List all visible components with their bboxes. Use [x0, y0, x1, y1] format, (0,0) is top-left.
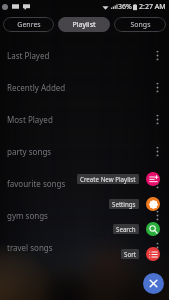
staticText: Create New Playlist: [80, 175, 136, 183]
staticText: Playlist: [72, 20, 96, 30]
staticText: Most Played: [7, 114, 145, 125]
staticText: Genres: [17, 20, 41, 30]
staticText: party songs: [7, 146, 145, 157]
button[interactable]: Sort: [146, 247, 160, 261]
staticText: Settings: [112, 200, 136, 208]
button[interactable]: More options: [145, 139, 169, 163]
button[interactable]: Search: [116, 224, 136, 234]
button[interactable]: More options: [145, 235, 169, 259]
button[interactable]: Most Played: [0, 103, 169, 135]
staticText: 2:27 AM: [139, 2, 166, 12]
button[interactable]: More options: [145, 43, 169, 67]
button[interactable]: More options: [145, 107, 169, 131]
staticText: gym songs: [7, 210, 145, 221]
staticText: Sort: [124, 250, 136, 258]
button[interactable]: Sort: [124, 249, 136, 259]
button[interactable]: Settings: [112, 199, 136, 209]
button[interactable]: Settings: [146, 197, 160, 211]
button[interactable]: Create New Playlist: [146, 172, 160, 186]
button[interactable]: travel songs: [0, 231, 169, 263]
button[interactable]: Last Played: [0, 39, 169, 71]
button[interactable]: Create New Playlist: [80, 174, 136, 184]
button[interactable]: Recently Added: [0, 71, 169, 103]
staticText: 36%: [118, 2, 132, 12]
button[interactable]: More options: [145, 203, 169, 227]
staticText: Recently Added: [7, 82, 145, 93]
button[interactable]: More options: [145, 171, 169, 195]
button[interactable]: Close menu: [143, 273, 164, 294]
staticText: Songs: [130, 20, 151, 30]
staticText: Search: [116, 225, 136, 233]
button[interactable]: Search: [146, 222, 160, 236]
button[interactable]: party songs: [0, 135, 169, 167]
button[interactable]: Songs: [114, 17, 166, 32]
button[interactable]: favourite songs: [0, 167, 169, 199]
button[interactable]: gym songs: [0, 199, 169, 231]
button[interactable]: Genres: [3, 17, 54, 32]
staticText: favourite songs: [7, 178, 145, 189]
staticText: Last Played: [7, 50, 145, 61]
button[interactable]: More options: [145, 75, 169, 99]
staticText: travel songs: [7, 242, 145, 253]
button[interactable]: Playlist: [58, 17, 110, 32]
